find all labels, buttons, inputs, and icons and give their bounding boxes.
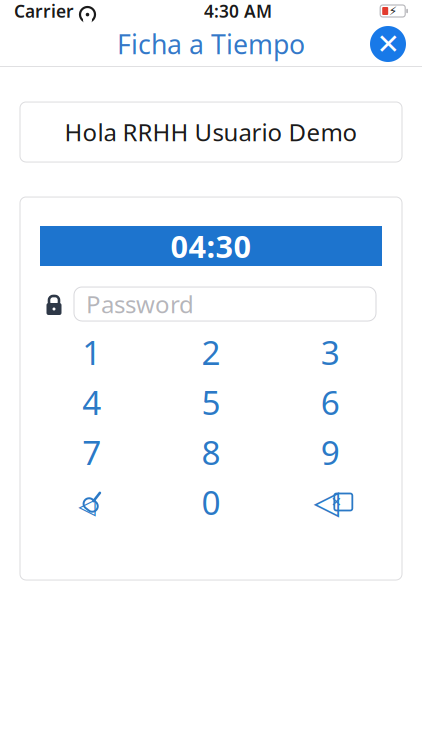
staticText: Hola RRHH Usuario Demo <box>64 116 357 148</box>
staticText: 7 <box>82 430 101 474</box>
button[interactable]: 1 <box>32 327 151 377</box>
button[interactable]: 6 <box>271 377 390 427</box>
staticText: 8 <box>201 430 220 474</box>
staticText: 6 <box>321 380 340 424</box>
staticText: 9 <box>321 430 340 474</box>
staticText: 4 <box>82 380 101 424</box>
staticText: 1 <box>82 330 101 374</box>
staticText: 3 <box>321 330 340 374</box>
staticText: ✕ <box>331 494 342 509</box>
staticText: 5 <box>201 380 220 424</box>
button[interactable]: 2 <box>151 327 271 377</box>
button[interactable]: 9 <box>271 427 390 477</box>
button[interactable]: Cerrar <box>366 22 410 66</box>
staticText: 0 <box>201 480 220 524</box>
button[interactable]: Limpiar <box>32 477 151 527</box>
button[interactable]: 7 <box>32 427 151 477</box>
staticText: ◁ <box>313 483 339 521</box>
staticText: Ficha a Tiempo <box>117 26 305 62</box>
button[interactable]: 4 <box>32 377 151 427</box>
staticText: ✕ <box>376 28 399 60</box>
button[interactable]: 3 <box>271 327 390 377</box>
button[interactable]: Borrar <box>271 477 390 527</box>
button[interactable]: 5 <box>151 377 271 427</box>
staticText: 4:30 AM <box>204 0 272 22</box>
staticText: Password <box>86 288 194 320</box>
staticText: ⚡︎ <box>389 4 397 18</box>
button[interactable]: 0 <box>151 477 271 527</box>
staticText: 04:30 <box>170 226 251 266</box>
staticText: Carrier <box>14 0 74 22</box>
staticText: ◁ <box>78 493 95 519</box>
button[interactable]: 8 <box>151 427 271 477</box>
staticText: 2 <box>201 330 220 374</box>
